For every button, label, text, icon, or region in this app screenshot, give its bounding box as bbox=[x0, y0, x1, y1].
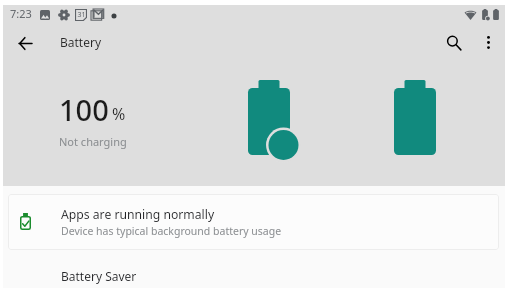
staticText: Apps are running normally bbox=[61, 206, 215, 223]
button[interactable]: Battery Saver bbox=[3, 250, 505, 288]
staticText: Device has typical background battery us… bbox=[61, 224, 282, 238]
staticText: Not charging bbox=[59, 134, 127, 149]
button[interactable]: Search bbox=[436, 25, 472, 61]
staticText: 100 bbox=[59, 90, 109, 129]
button[interactable]: Back bbox=[7, 25, 43, 61]
button[interactable]: More options bbox=[472, 26, 504, 58]
button[interactable]: Apps are running normally bbox=[8, 194, 499, 250]
staticText: Battery Saver bbox=[61, 268, 137, 284]
staticText: 7:23 bbox=[10, 6, 32, 21]
staticText: % bbox=[112, 103, 126, 125]
staticText: Battery bbox=[60, 34, 102, 50]
staticText: 31 bbox=[77, 10, 86, 20]
